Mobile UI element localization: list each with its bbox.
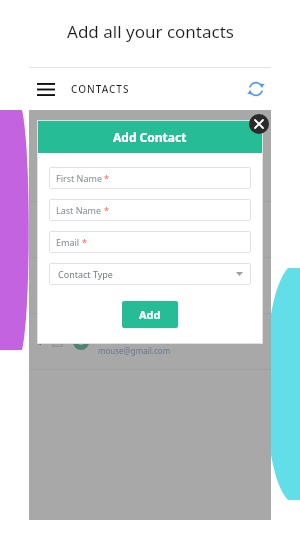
staticText: 3 [37, 280, 42, 291]
button[interactable]: Email [49, 231, 251, 253]
button[interactable]: Close dialog [249, 114, 269, 134]
staticText: * [104, 204, 109, 216]
staticText: 1 [37, 168, 42, 179]
staticText: CONTACTS [71, 82, 130, 96]
staticText: * [104, 172, 109, 184]
button[interactable]: 3 [29, 258, 271, 313]
staticText: Contact Type [58, 268, 113, 280]
staticText: Emmanuel Wright [98, 160, 170, 171]
button[interactable]: Contact Type [49, 263, 251, 285]
staticText: Last Name [56, 204, 102, 216]
staticText: Add [139, 307, 161, 322]
staticText: mouse@gmail.com [98, 345, 171, 356]
button[interactable]: Add [122, 301, 178, 328]
button[interactable]: 2 [29, 202, 271, 257]
staticText: Email [56, 236, 80, 248]
staticText: Jon Chaplak [98, 216, 146, 227]
button[interactable]: Refresh contacts [241, 74, 271, 104]
button[interactable]: 4 [29, 314, 271, 369]
button[interactable]: First Name [49, 167, 251, 189]
staticText: Add Contact [113, 129, 187, 145]
staticText: 2 [37, 224, 42, 235]
button[interactable]: 1 [29, 146, 271, 201]
staticText: * [82, 236, 87, 248]
staticText: First Name [56, 172, 102, 184]
staticText: Don Duck [98, 272, 137, 283]
staticText: emmanuel@gmail.com [98, 177, 185, 188]
staticText: 4 [37, 336, 42, 347]
staticText: Add all your contacts [67, 20, 234, 43]
button[interactable]: Open navigation menu [29, 72, 63, 106]
button[interactable]: Last Name [49, 199, 251, 221]
